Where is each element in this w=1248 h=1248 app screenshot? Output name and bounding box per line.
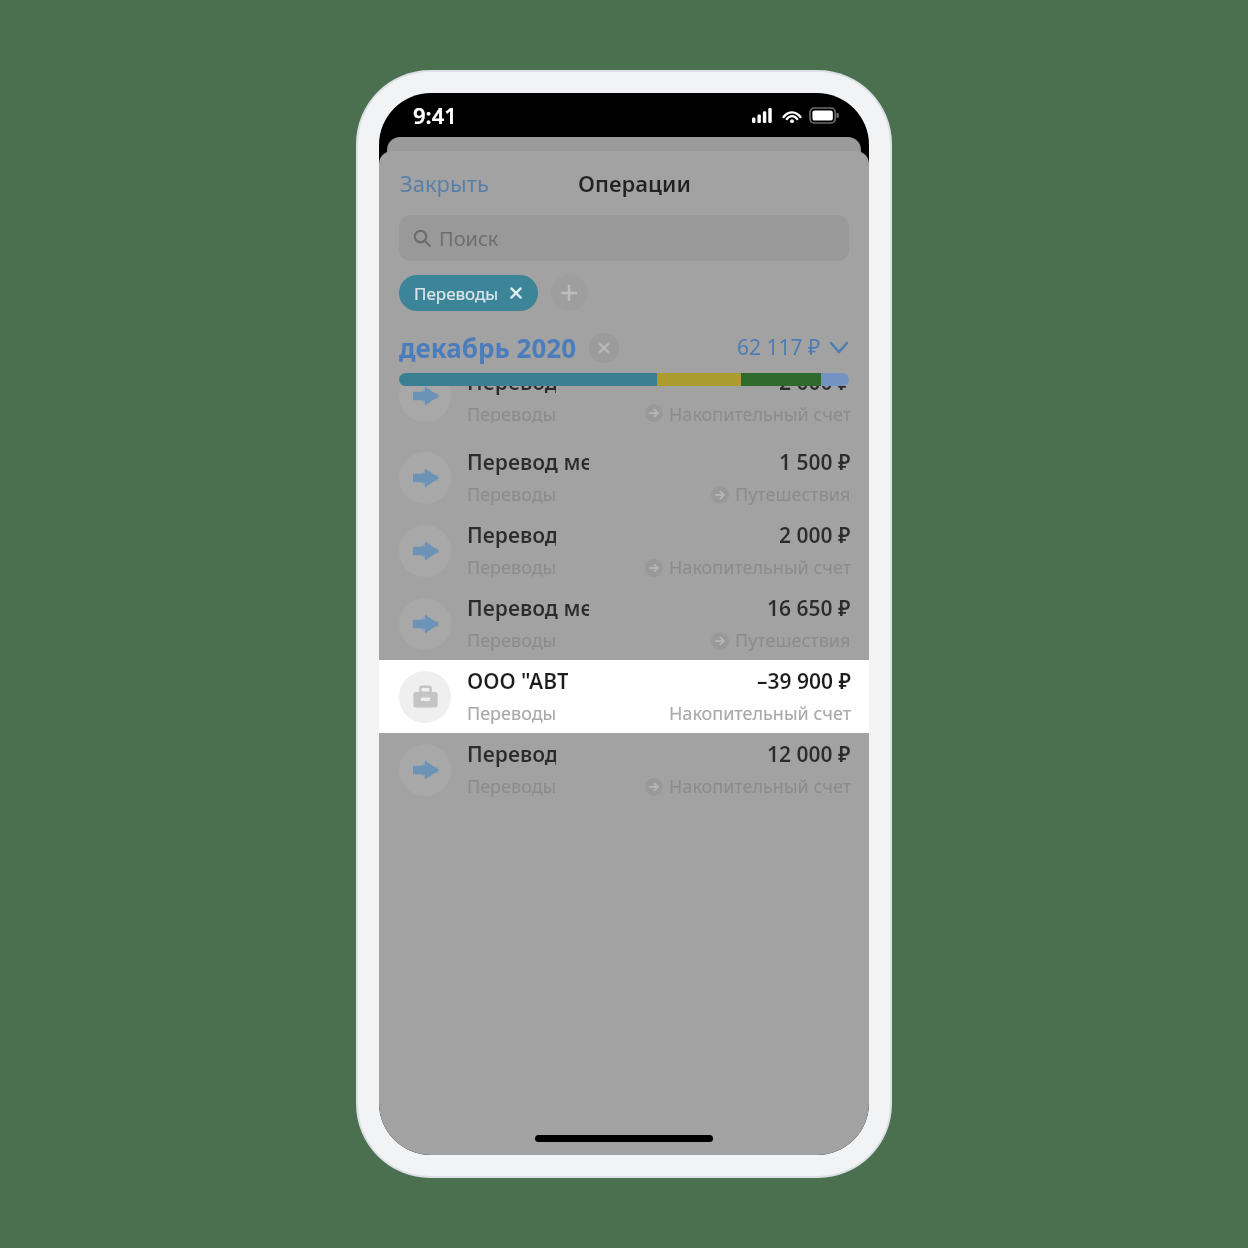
staticText: Перевод между счетами [467, 386, 556, 397]
staticText: Операции [578, 168, 691, 198]
staticText: Накопительный счет [669, 402, 851, 423]
staticText: 2 000 ₽ [779, 386, 851, 397]
button[interactable]: Перевод между счетами [379, 733, 869, 806]
staticText: Переводы [467, 402, 556, 423]
staticText: Накопительный счет [669, 774, 851, 799]
staticText: ООО "АВТОШКОЛА АБВ" [467, 667, 568, 696]
staticText: Перевод между счетами [467, 594, 589, 623]
button[interactable]: Перевод между счетами [379, 386, 869, 423]
button[interactable]: Сбросить период [589, 333, 619, 363]
staticText: Закрыть [400, 168, 489, 198]
staticText: –39 900 ₽ [757, 667, 851, 696]
staticText: Поиск [439, 225, 499, 252]
staticText: 2 000 ₽ [779, 521, 851, 550]
staticText: Переводы [467, 482, 557, 507]
staticText: 9:41 [413, 100, 457, 130]
button[interactable]: Поиск [399, 215, 849, 261]
staticText: Переводы [467, 774, 556, 799]
staticText: 16 650 ₽ [767, 594, 851, 623]
staticText: Переводы [414, 282, 499, 305]
staticText: Накопительный счет [669, 701, 851, 726]
staticText: Переводы [467, 628, 557, 653]
button[interactable]: Закрыть [389, 161, 500, 205]
button[interactable]: 62 117 ₽ [733, 329, 851, 366]
staticText: 62 117 ₽ [737, 333, 821, 362]
staticText: 1 500 ₽ [779, 448, 851, 477]
staticText: 12 000 ₽ [767, 740, 851, 769]
staticText: Путешествия [735, 482, 851, 507]
staticText: Перевод между счетами [467, 740, 556, 769]
button[interactable]: Перевод между счетами [379, 441, 869, 514]
button[interactable]: Переводы [399, 275, 538, 311]
button[interactable]: Перевод между счетами [379, 514, 869, 587]
button[interactable]: Добавить фильтр [551, 275, 587, 311]
button[interactable]: ООО "АВТОШКОЛА АБВ" [379, 660, 869, 733]
staticText: Путешествия [735, 628, 851, 653]
staticText: Накопительный счет [669, 555, 851, 580]
staticText: Перевод между счетами [467, 521, 556, 550]
staticText: Переводы [467, 555, 556, 580]
staticText: Переводы [467, 701, 557, 726]
staticText: Перевод между счетами [467, 448, 589, 477]
button[interactable]: Перевод между счетами [379, 587, 869, 660]
staticText: декабрь 2020 [399, 330, 577, 365]
